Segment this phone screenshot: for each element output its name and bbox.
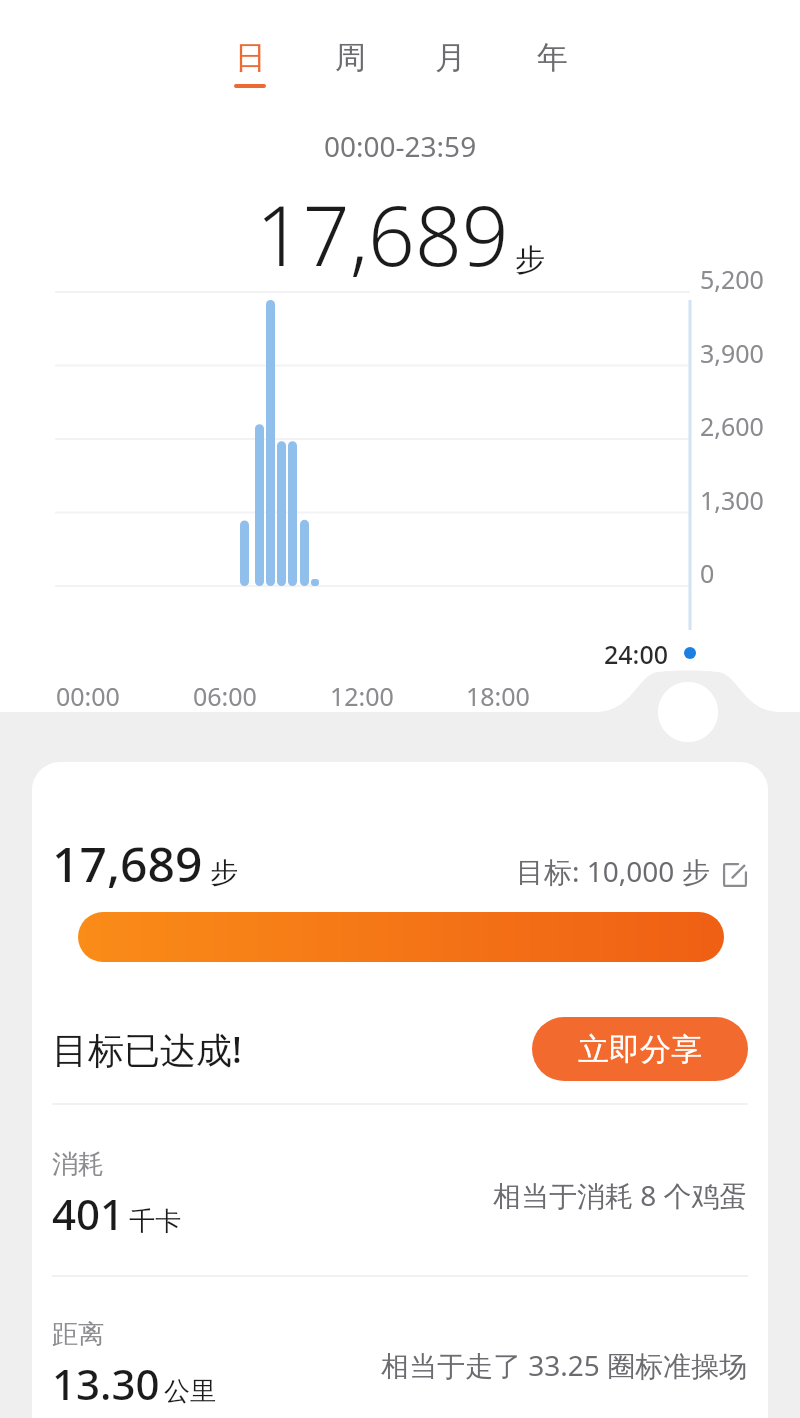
staticText: 千卡 <box>129 1205 181 1238</box>
staticText: 步 <box>515 241 545 279</box>
staticText: 目标已达成! <box>52 1025 242 1074</box>
staticText: 相当于走了 33.25 圈标准操场 <box>381 1346 748 1384</box>
staticText: 1,300 <box>700 483 764 517</box>
staticText: 06:00 <box>193 679 257 713</box>
staticText: 日 <box>235 38 266 77</box>
staticText: 2,600 <box>700 409 764 443</box>
staticText: 3,900 <box>700 336 764 370</box>
staticText: 公里 <box>164 1375 216 1408</box>
staticText: 5,200 <box>700 262 764 296</box>
staticText: 12:00 <box>330 679 394 713</box>
button[interactable]: 距离 <box>52 1318 748 1418</box>
staticText: 18:00 <box>466 679 530 713</box>
button[interactable]: 年 <box>512 38 592 94</box>
staticText: 17,689 <box>52 831 203 896</box>
staticText: 步 <box>210 855 238 890</box>
staticText: 401 <box>52 1185 125 1242</box>
staticText: 消耗 <box>52 1148 104 1181</box>
button[interactable]: 月 <box>410 38 490 94</box>
staticText: 00:00 <box>56 679 120 713</box>
staticText: 目标: 10,000 步 <box>516 852 710 890</box>
staticText: 年 <box>537 38 568 77</box>
staticText: 00:00-23:59 <box>324 127 477 165</box>
staticText: 17,689 <box>256 178 509 290</box>
staticText: 0 <box>700 556 715 590</box>
staticText: 月 <box>435 38 466 77</box>
button[interactable]: 消耗 <box>52 1148 748 1248</box>
button[interactable]: 周 <box>310 38 390 94</box>
staticText: 相当于消耗 8 个鸡蛋 <box>493 1176 748 1214</box>
staticText: 周 <box>335 38 366 77</box>
staticText: 24:00 <box>604 637 669 671</box>
staticText: 13.30 <box>52 1355 160 1412</box>
staticText: 立即分享 <box>578 1030 702 1069</box>
other: 修改目标 <box>722 862 748 888</box>
button[interactable]: 日 <box>210 38 290 94</box>
button[interactable]: 更多 <box>658 682 718 742</box>
staticText: 距离 <box>52 1318 104 1351</box>
button[interactable]: 17,689 <box>52 830 748 896</box>
button[interactable]: 立即分享 <box>532 1017 748 1081</box>
